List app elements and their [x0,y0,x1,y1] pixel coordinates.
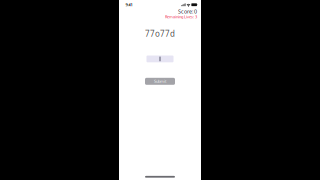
staticText: Submit [154,79,166,84]
button[interactable]: Answer [146,55,173,62]
staticText: Remaining Lives: 3 [165,14,197,19]
button[interactable]: Submit [145,78,175,85]
staticText: 9:41 [125,2,132,7]
staticText: 77o77d [145,28,175,39]
staticText: Score: 0 [178,8,197,15]
